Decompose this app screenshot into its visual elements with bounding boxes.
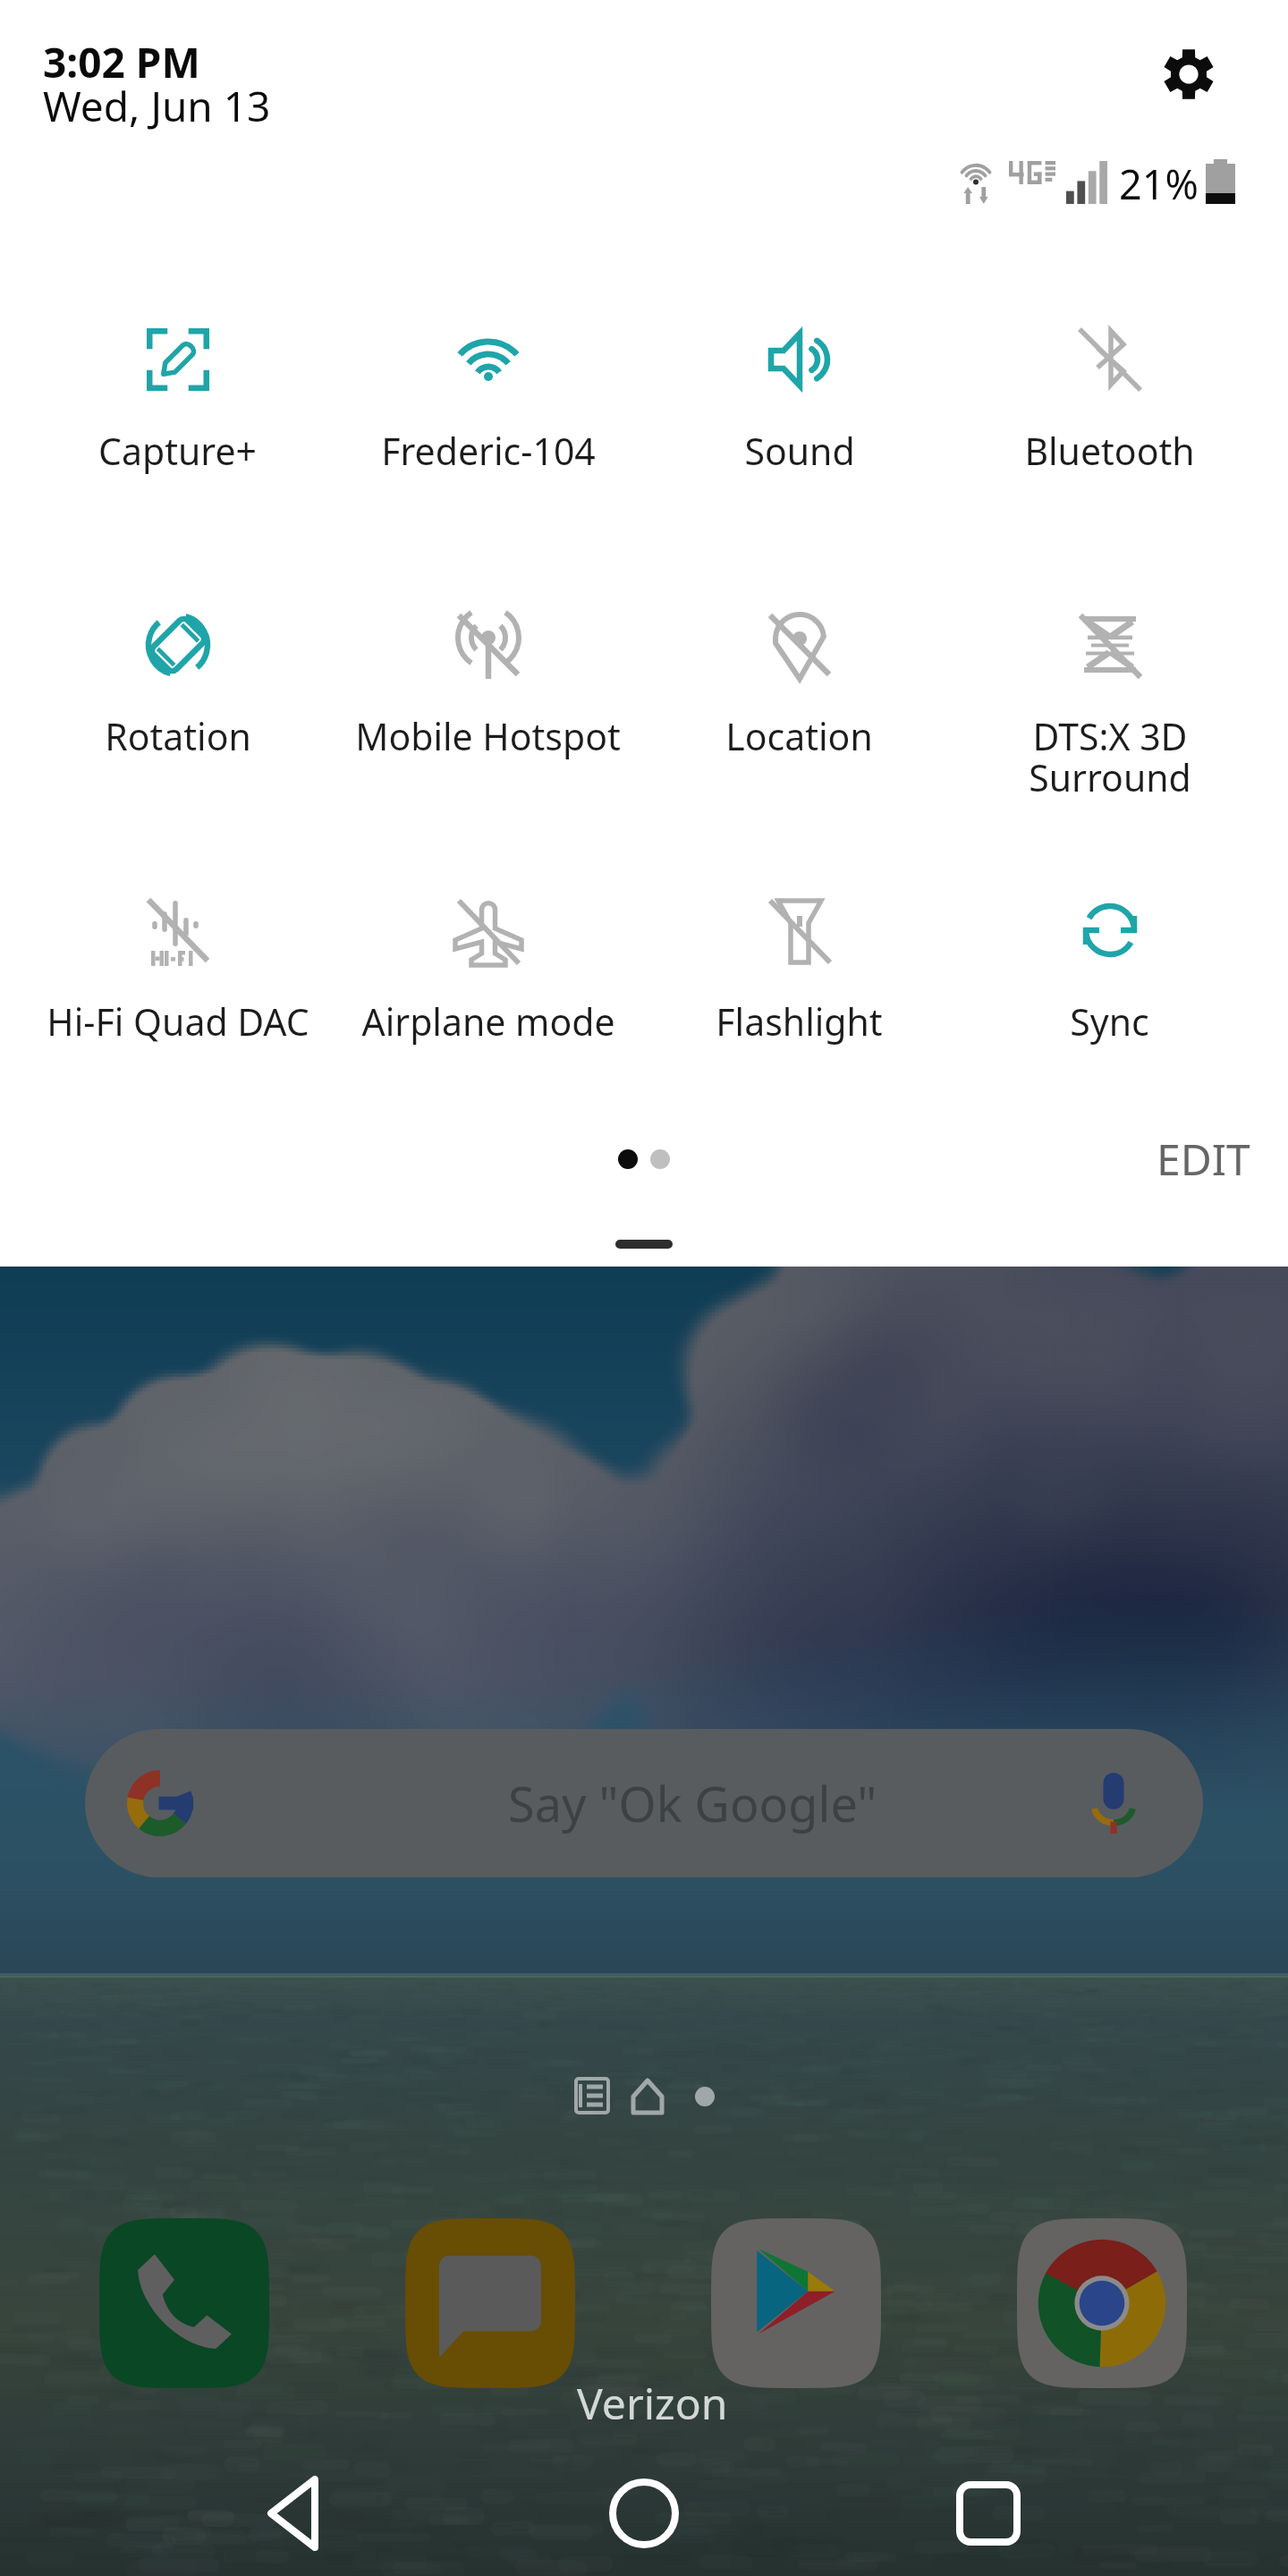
button[interactable]: Flashlight <box>644 868 954 1127</box>
staticText: Verizon <box>577 2374 728 2432</box>
button[interactable]: Rotation <box>22 582 333 842</box>
staticText: Hi-Fi Quad DAC <box>47 996 309 1046</box>
button[interactable]: Home <box>599 2469 689 2558</box>
staticText: Wed, Jun 13 <box>43 78 271 134</box>
staticText: Capture+ <box>98 426 257 476</box>
button[interactable]: DTS:X 3D Surround <box>954 582 1265 842</box>
staticText: Bluetooth <box>1024 426 1195 476</box>
button[interactable]: Location <box>644 582 954 842</box>
staticText: Rotation <box>105 711 251 761</box>
button[interactable]: Chrome <box>1017 2218 1187 2388</box>
staticText: 3:02 PM <box>43 34 200 90</box>
staticText: DTS:X 3D Surround <box>1029 711 1191 802</box>
staticText: EDIT <box>1157 1130 1250 1188</box>
button[interactable]: Phone <box>99 2218 269 2388</box>
button[interactable]: Frederic-104 <box>333 297 643 556</box>
button[interactable]: Airplane mode <box>333 868 643 1127</box>
button[interactable]: Sync <box>954 868 1265 1127</box>
staticText: Flashlight <box>716 996 883 1046</box>
button[interactable]: Play Store <box>711 2218 881 2388</box>
button[interactable]: Messages <box>405 2218 575 2388</box>
button[interactable]: Settings <box>1147 32 1231 116</box>
button[interactable]: Sound <box>644 297 954 556</box>
staticText: Mobile Hotspot <box>355 711 621 761</box>
button[interactable]: Hi-Fi Quad DAC <box>22 868 333 1127</box>
button[interactable]: Bluetooth <box>954 297 1265 556</box>
button[interactable]: Back <box>250 2469 340 2558</box>
staticText: Location <box>725 711 873 761</box>
staticText: Sound <box>744 426 855 476</box>
button[interactable]: Mobile Hotspot <box>333 582 643 842</box>
button[interactable]: Say "Ok Google" <box>85 1729 1203 1877</box>
button[interactable]: Capture+ <box>22 297 333 556</box>
staticText: Sync <box>1070 996 1149 1046</box>
staticText: Frederic-104 <box>381 426 596 476</box>
staticText: 21% <box>1119 157 1199 211</box>
button[interactable]: EDIT <box>1142 1117 1265 1200</box>
button[interactable]: Recents <box>944 2469 1033 2558</box>
staticText: Say "Ok Google" <box>508 1770 877 1836</box>
staticText: Airplane mode <box>361 996 615 1046</box>
